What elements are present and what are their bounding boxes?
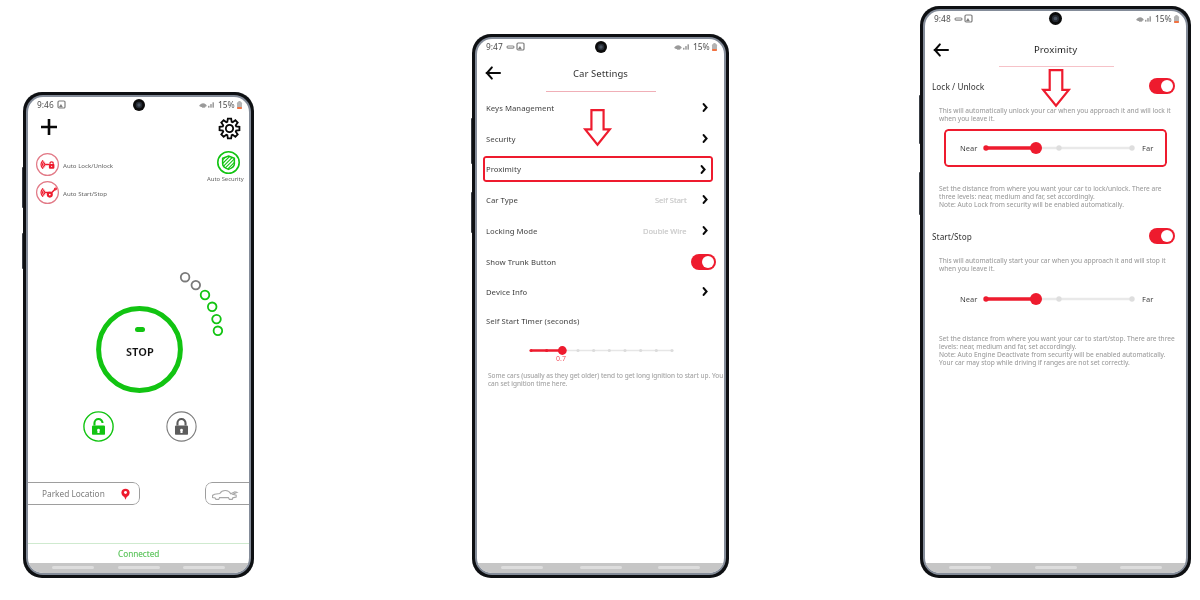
button[interactable]: Add device bbox=[36, 114, 61, 139]
staticText: 9:47 bbox=[486, 41, 503, 52]
staticText: Auto Lock/Unlock bbox=[63, 161, 114, 169]
button[interactable] bbox=[217, 151, 240, 174]
staticText: Device Info bbox=[486, 287, 528, 297]
staticText: Lock / Unlock bbox=[932, 81, 985, 92]
staticText: Locking Mode bbox=[486, 226, 538, 236]
button[interactable]: Car Type bbox=[477, 184, 724, 215]
staticText: Self Start Timer (seconds) bbox=[486, 316, 580, 326]
staticText: Keys Management bbox=[486, 103, 555, 113]
staticText: 9:48 bbox=[934, 13, 951, 24]
staticText: Proximity bbox=[1034, 43, 1078, 56]
button[interactable]: Parked Location bbox=[28, 482, 140, 505]
staticText: Auto Start/Stop bbox=[63, 189, 108, 197]
button[interactable]: Keys Management bbox=[477, 92, 724, 123]
button[interactable]: Back bbox=[482, 62, 504, 84]
button[interactable]: Locking Mode bbox=[477, 215, 724, 246]
button[interactable]: Settings bbox=[217, 116, 242, 141]
button[interactable]: Start/Stop bbox=[925, 225, 1186, 247]
button[interactable]: Lock bbox=[166, 411, 197, 442]
staticText: Start/Stop bbox=[932, 231, 972, 242]
staticText: 15% bbox=[693, 41, 710, 52]
staticText: Far bbox=[1142, 294, 1154, 304]
button[interactable]: Security bbox=[477, 123, 724, 154]
staticText: Near bbox=[960, 294, 978, 304]
staticText: 15% bbox=[1155, 13, 1172, 24]
staticText: 15% bbox=[218, 99, 235, 110]
button[interactable]: Back bbox=[930, 39, 952, 61]
staticText: 0.7 bbox=[556, 354, 566, 364]
staticText: Set the distance from where you want you… bbox=[939, 184, 1172, 209]
staticText: 9:46 bbox=[37, 99, 54, 110]
staticText: This will automatically unlock your car … bbox=[939, 106, 1172, 123]
button[interactable]: Device Info bbox=[477, 276, 724, 307]
staticText: Show Trunk Button bbox=[486, 257, 557, 267]
button[interactable]: Toggle bbox=[691, 254, 716, 270]
button[interactable]: STOP bbox=[96, 306, 183, 393]
staticText: This will automatically start your car w… bbox=[939, 256, 1172, 273]
staticText: Connected bbox=[118, 548, 160, 559]
staticText: Auto Security bbox=[207, 175, 244, 183]
staticText: Far bbox=[1142, 143, 1154, 153]
staticText: Parked Location bbox=[42, 488, 105, 499]
staticText: Self Start bbox=[655, 195, 687, 205]
button[interactable]: Toggle bbox=[1149, 78, 1175, 94]
staticText: Near bbox=[960, 143, 978, 153]
staticText: STOP bbox=[126, 344, 154, 359]
button[interactable]: Auto Lock/Unlock bbox=[36, 153, 114, 176]
button[interactable]: Auto Start/Stop bbox=[36, 181, 108, 204]
button[interactable]: Car status bbox=[205, 482, 249, 505]
staticText: Car Settings bbox=[573, 67, 628, 80]
button[interactable]: Lock / Unlock bbox=[925, 75, 1186, 97]
staticText: Proximity bbox=[486, 164, 521, 174]
button[interactable]: Proximity bbox=[483, 156, 713, 182]
staticText: Double Wire bbox=[643, 226, 687, 236]
staticText: Car Type bbox=[486, 195, 518, 205]
button[interactable]: Unlock bbox=[83, 411, 114, 442]
button[interactable]: Show Trunk Button bbox=[477, 246, 724, 277]
staticText: Set the distance from where you want you… bbox=[939, 334, 1177, 367]
staticText: Some cars (usually as they get older) te… bbox=[488, 371, 724, 388]
staticText: Security bbox=[486, 134, 516, 144]
button[interactable]: Toggle bbox=[1149, 228, 1175, 244]
